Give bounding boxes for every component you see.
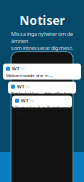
button[interactable]: Notis: Våldsamt oväder drar in — räddnin… — [3, 64, 81, 80]
staticText: nu — [30, 99, 34, 102]
button[interactable]: Notis: Så påverkas du av förändringen i … — [12, 96, 72, 108]
staticText: Notiser — [19, 12, 64, 28]
staticText: Missa inga nyheter om de ämnen som intre… — [11, 30, 73, 51]
staticText: Så påverkas du av förändringen i höst — [15, 105, 69, 115]
staticText: Nytt beslut klart — detta gäller från oc… — [11, 91, 71, 101]
staticText: SVT — [21, 98, 28, 103]
staticText: SVT — [12, 66, 19, 71]
staticText: nu — [21, 67, 25, 70]
button[interactable]: Notis: Nytt beslut klart — detta gäller … — [8, 82, 76, 94]
staticText: nu — [26, 85, 30, 88]
staticText: SVT — [17, 84, 24, 89]
staticText: Våldsamt oväder drar in — räddningstjäns… — [6, 73, 53, 83]
